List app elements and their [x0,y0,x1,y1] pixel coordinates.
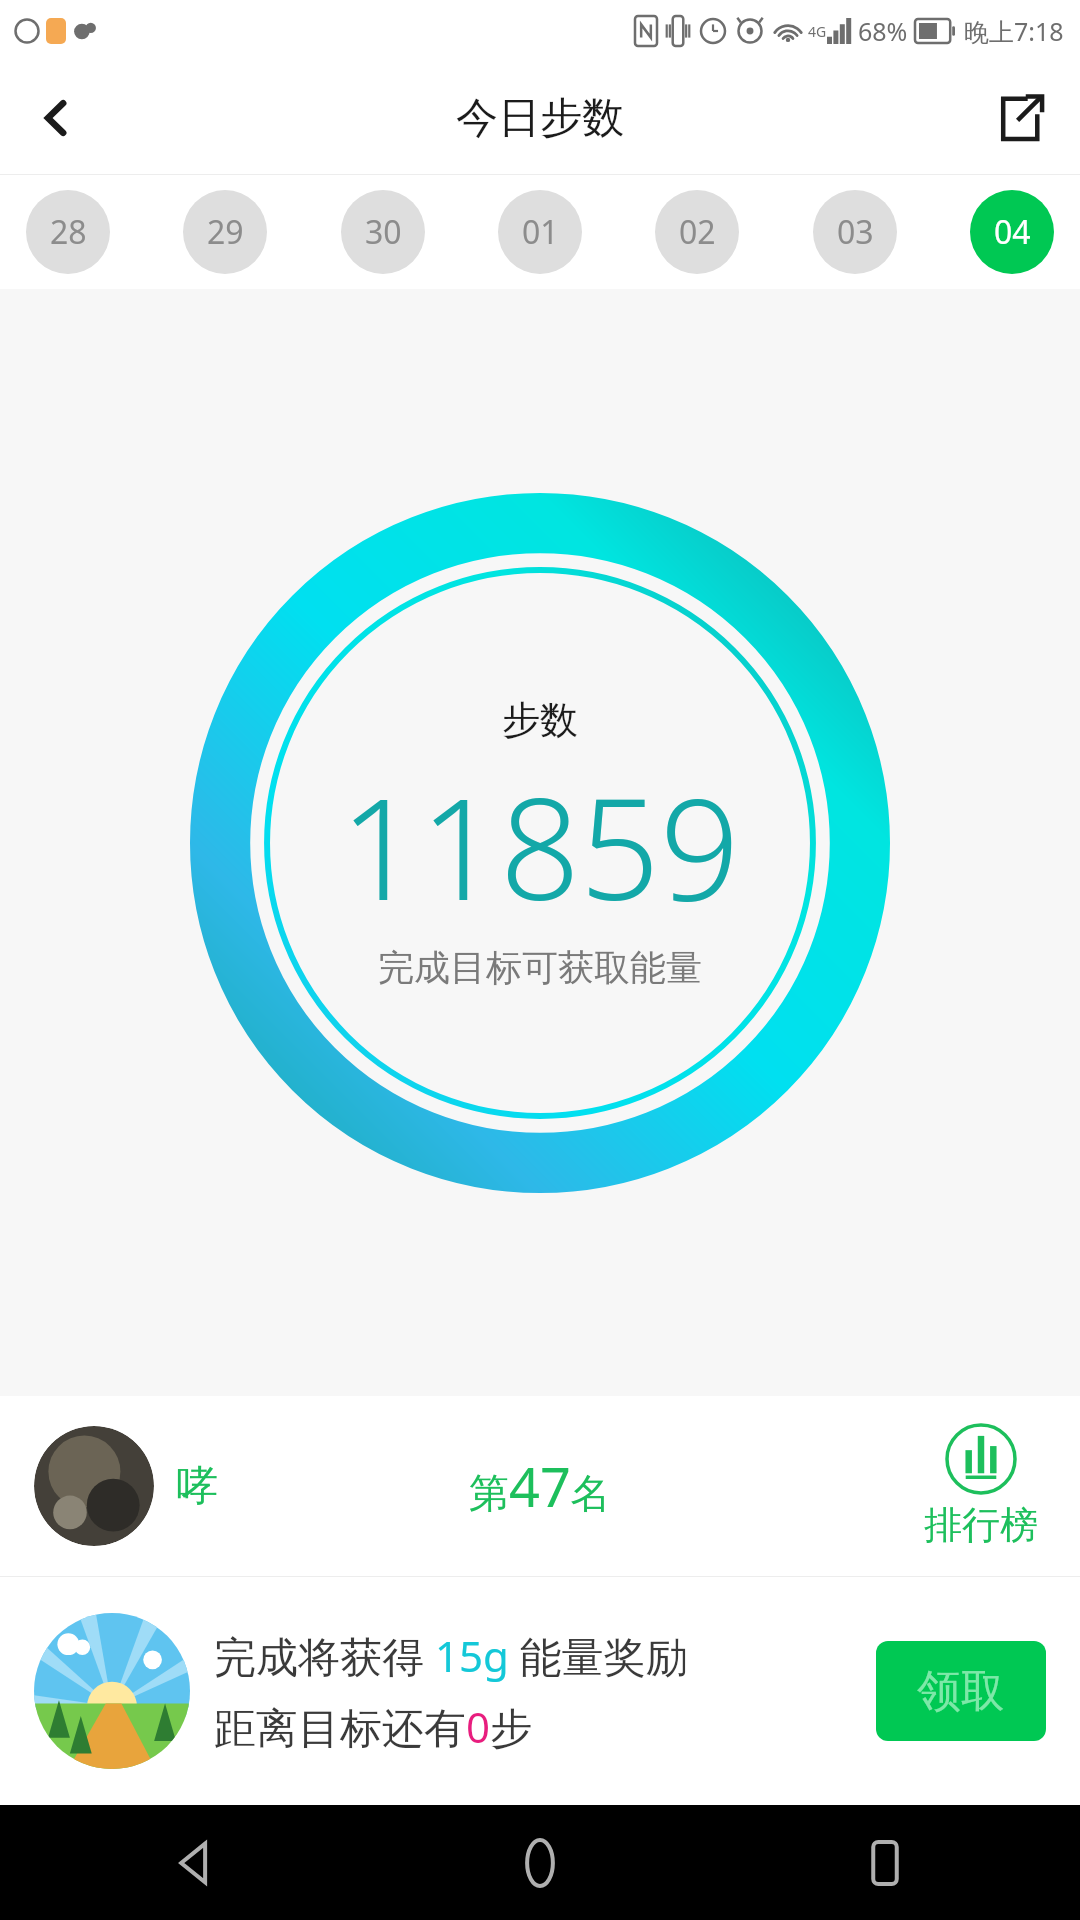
staticText: 晚上7:18 [964,14,1064,48]
staticText: 今日步数 [456,92,624,145]
button[interactable]: 28 [26,190,110,274]
button[interactable]: 01 [498,190,582,274]
staticText: 30 [365,210,402,254]
staticText: 11859 [340,750,740,941]
button[interactable]: 29 [183,190,267,274]
staticText: 01 [522,210,559,254]
button[interactable]: Back [150,1818,240,1908]
button[interactable]: 领取 [876,1641,1046,1741]
staticText: 步数 [502,696,578,744]
button[interactable]: Home [495,1818,585,1908]
button[interactable]: 03 [813,190,897,274]
staticText: 第47名 [469,1449,611,1523]
staticText: 28 [50,210,87,254]
staticText: 排行榜 [924,1501,1038,1549]
button[interactable]: 04 [970,190,1054,274]
staticText: 完成目标可获取能量 [378,945,702,990]
staticText: 领取 [917,1664,1005,1719]
staticText: 哮 [176,1460,218,1513]
staticText: 29 [207,210,244,254]
staticText: 03 [837,210,874,254]
button[interactable]: 30 [341,190,425,274]
button[interactable]: Back [18,80,94,156]
staticText: 68% [858,14,908,48]
staticText: 距离目标还有0步 [214,1698,533,1755]
staticText: 04 [994,210,1031,254]
button[interactable]: 02 [655,190,739,274]
staticText: 4G [808,22,827,41]
button[interactable]: Recents [840,1818,930,1908]
button[interactable]: Share [982,80,1058,156]
button[interactable]: 哮 [0,1396,1080,1576]
button[interactable]: 排行榜 [924,1423,1038,1549]
staticText: 02 [679,210,716,254]
staticText: 完成将获得 15g 能量奖励 [214,1627,688,1684]
